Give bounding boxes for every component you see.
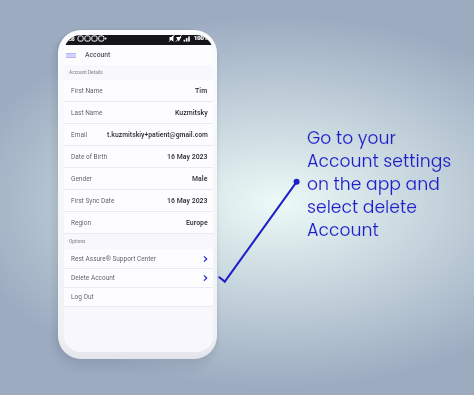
other: Open Rest Assure® Support Center <box>203 255 208 263</box>
staticText: Region <box>71 219 91 227</box>
staticText: Date of Birth <box>71 153 108 161</box>
button[interactable]: Date of Birth <box>64 146 213 167</box>
staticText: Kuzmitsky <box>175 109 208 117</box>
other: Open Delete Account <box>203 274 208 282</box>
staticText: Log Out <box>71 293 94 301</box>
button[interactable]: First Sync Date <box>64 190 213 211</box>
staticText: Rest Assure® Support Center <box>71 255 156 263</box>
staticText: 58 <box>69 36 75 42</box>
staticText: Last Name <box>71 109 103 117</box>
button[interactable]: First Name <box>64 80 213 101</box>
staticText: Gender <box>71 175 92 183</box>
staticText: Go to your Account settings on the app a… <box>307 126 452 242</box>
staticText: 16 May 2023 <box>167 153 208 161</box>
staticText: Tim <box>195 87 208 95</box>
button[interactable]: Region <box>64 212 213 233</box>
button[interactable]: Gender <box>64 168 213 189</box>
button[interactable]: Open navigation menu <box>66 53 76 58</box>
button[interactable]: Delete Account <box>64 269 213 287</box>
staticText: Account <box>85 51 111 59</box>
staticText: 16 May 2023 <box>167 197 208 205</box>
button[interactable]: Log Out <box>64 288 213 306</box>
button[interactable]: Last Name <box>64 102 213 123</box>
staticText: Email <box>71 131 88 139</box>
staticText: First Sync Date <box>71 197 115 205</box>
button[interactable]: Rest Assure® Support Center <box>64 249 213 268</box>
staticText: Male <box>192 175 208 183</box>
staticText: Account Details <box>69 70 103 76</box>
staticText: Delete Account <box>71 274 115 282</box>
staticText: 100% <box>194 35 209 42</box>
staticText: Options <box>69 239 86 245</box>
staticText: Europe <box>186 219 208 227</box>
staticText: First Name <box>71 87 103 95</box>
button[interactable]: Email <box>64 124 213 145</box>
staticText: t.kuzmitskiy+patient@gmail.com <box>107 131 208 139</box>
